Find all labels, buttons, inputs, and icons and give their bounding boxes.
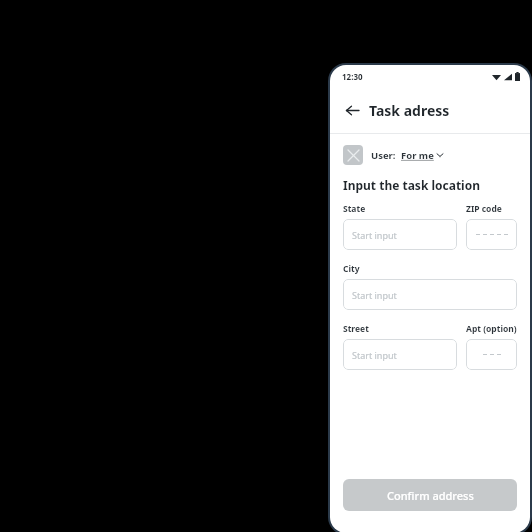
staticText: ZIP code bbox=[466, 203, 502, 215]
button[interactable] bbox=[466, 219, 517, 250]
staticText: State bbox=[343, 203, 366, 215]
button[interactable]: Start input bbox=[343, 339, 457, 370]
button[interactable]: Start input bbox=[343, 219, 457, 250]
button[interactable]: Back bbox=[342, 100, 362, 120]
staticText: Start input bbox=[352, 229, 397, 241]
staticText: Input the task location bbox=[343, 177, 481, 193]
staticText: Start input bbox=[352, 289, 397, 301]
staticText: City bbox=[343, 263, 360, 275]
staticText: Apt (option) bbox=[466, 323, 517, 335]
staticText: Confirm address bbox=[387, 488, 474, 503]
button[interactable]: User: bbox=[343, 145, 443, 165]
staticText: Start input bbox=[352, 349, 397, 361]
staticText: Street bbox=[343, 323, 369, 335]
button[interactable]: Start input bbox=[343, 279, 517, 310]
staticText: For me bbox=[401, 149, 434, 162]
button[interactable] bbox=[466, 339, 517, 370]
staticText: 12:30 bbox=[342, 71, 363, 82]
staticText: User: bbox=[371, 149, 396, 162]
button[interactable]: Confirm address bbox=[343, 479, 517, 511]
staticText: Task adress bbox=[369, 101, 450, 120]
